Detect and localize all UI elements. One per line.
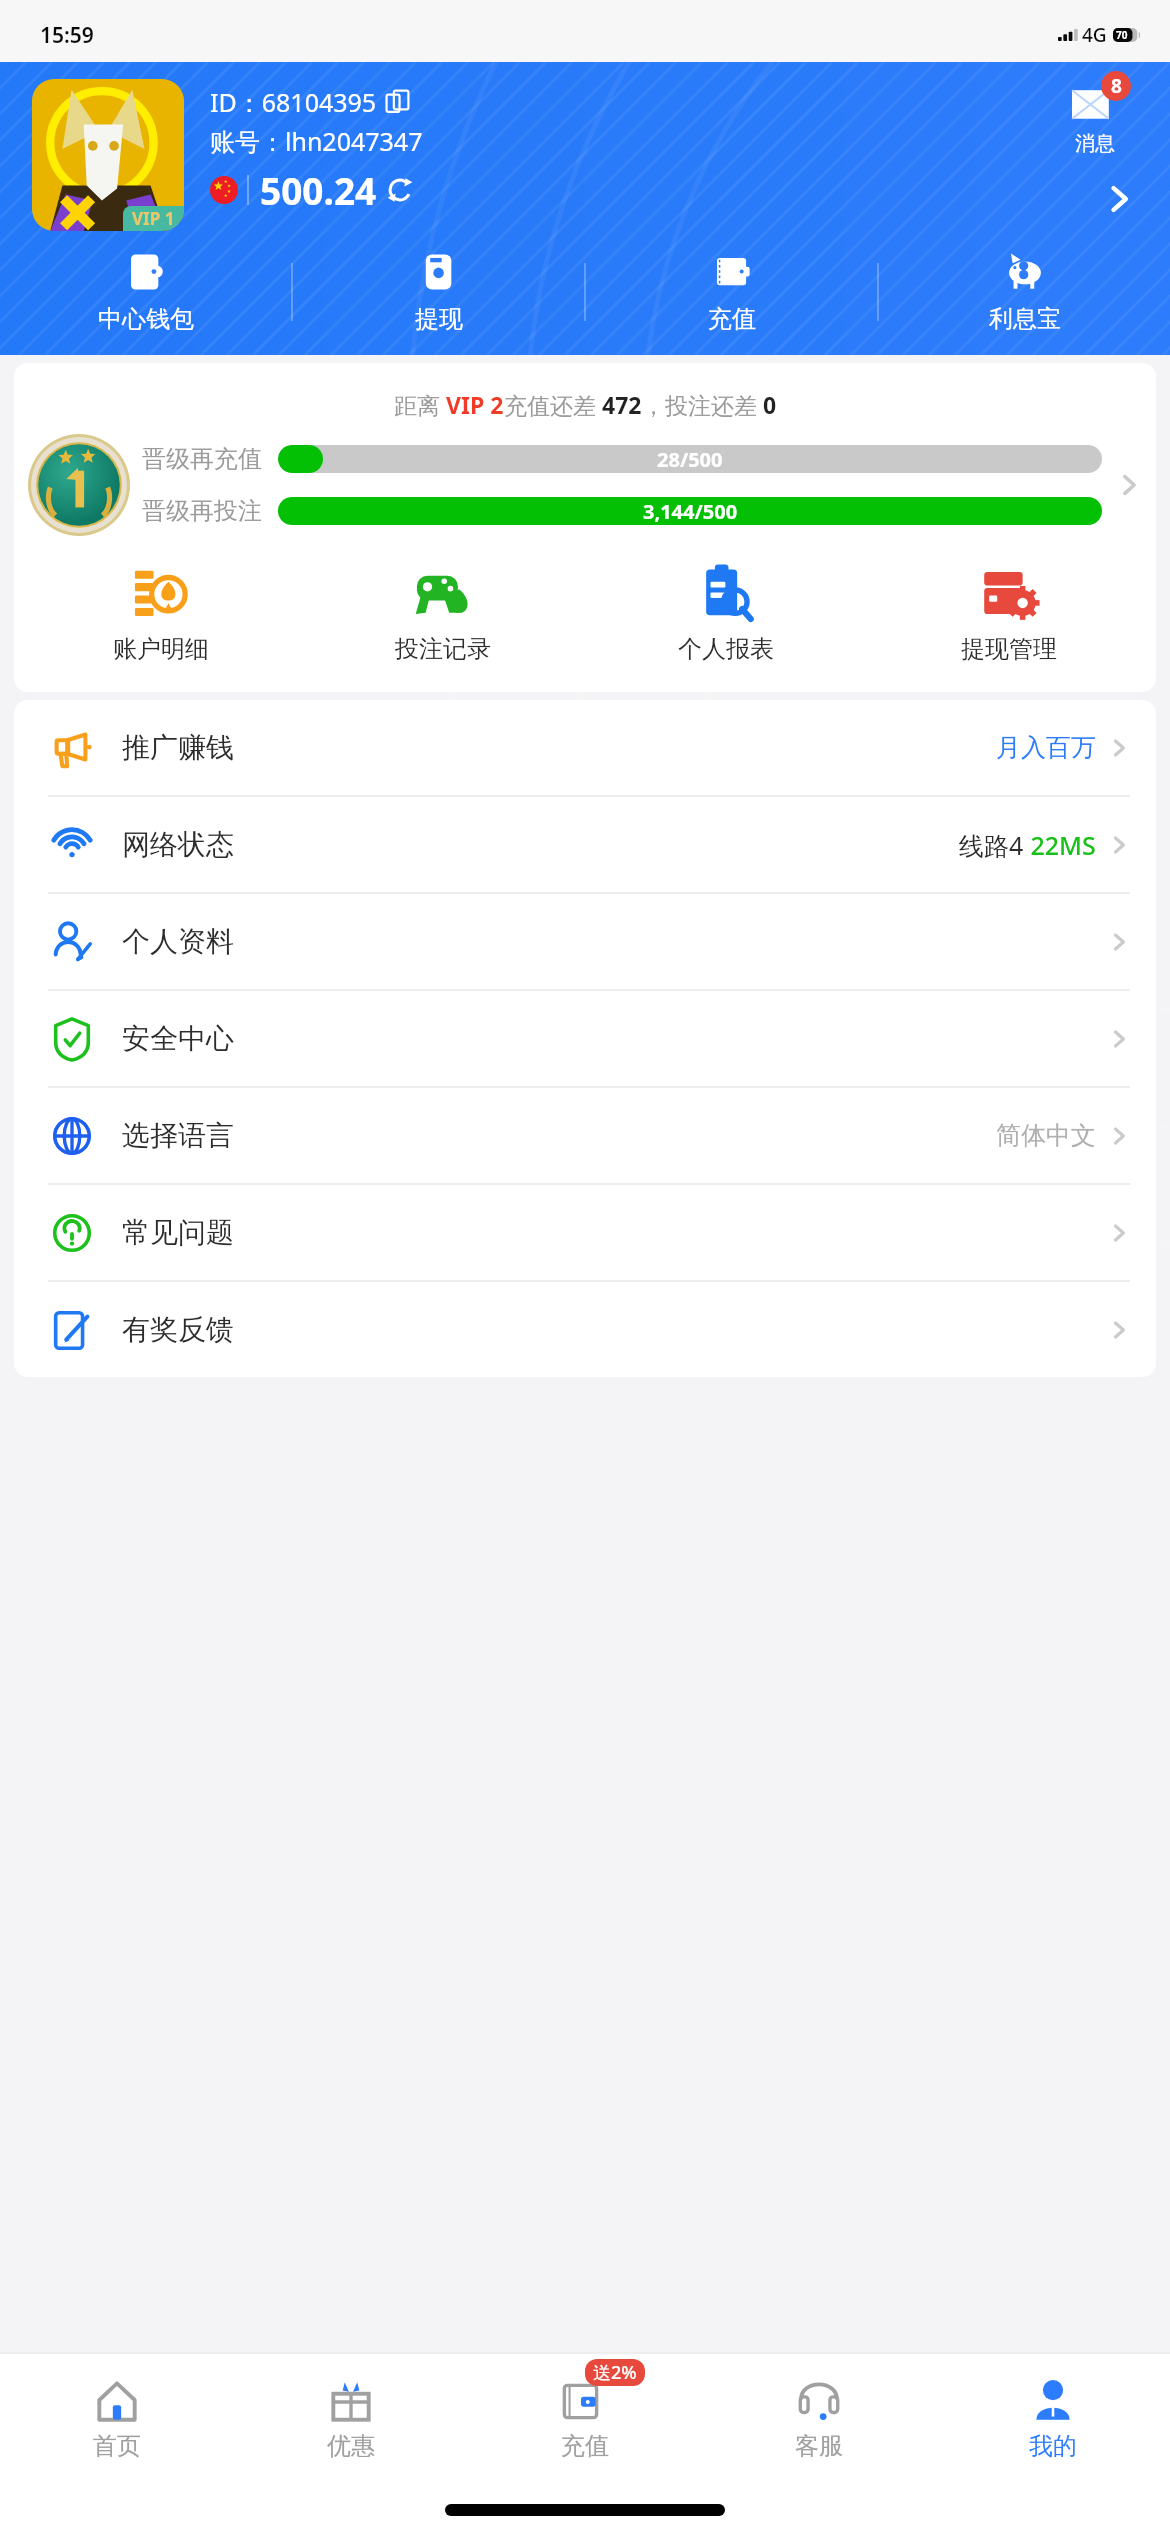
staticText: ，投注还差 bbox=[642, 389, 763, 420]
staticText: 账户明细 bbox=[113, 634, 209, 664]
staticText: 提现管理 bbox=[961, 634, 1057, 664]
staticText: 15:59 bbox=[40, 21, 94, 50]
staticText: 优惠 bbox=[327, 2431, 375, 2461]
button[interactable]: 个人报表 bbox=[584, 562, 867, 664]
staticText: 账号：lhn2047347 bbox=[210, 124, 423, 158]
staticText: 0 bbox=[763, 389, 777, 420]
staticText: 500.24 bbox=[260, 165, 377, 215]
staticText: 客服 bbox=[795, 2431, 843, 2461]
staticText: ID：68104395 bbox=[210, 85, 377, 119]
staticText: 消息 bbox=[1075, 131, 1115, 156]
button[interactable]: 网络状态 bbox=[14, 797, 1156, 892]
button[interactable]: 利息宝 bbox=[879, 229, 1170, 355]
staticText: 472 bbox=[602, 389, 642, 420]
button[interactable]: 送2% bbox=[468, 2352, 702, 2484]
button[interactable]: 提现管理 bbox=[867, 562, 1150, 664]
button[interactable]: 8 bbox=[1020, 81, 1170, 156]
staticText: VIP 2 bbox=[446, 389, 504, 420]
button[interactable]: 个人资料 bbox=[14, 894, 1156, 989]
staticText: 利息宝 bbox=[989, 304, 1061, 334]
button[interactable]: 首页 bbox=[0, 2352, 234, 2484]
staticText: 8 bbox=[1111, 73, 1122, 99]
button[interactable]: Copy ID bbox=[385, 89, 411, 115]
button[interactable]: 晋级再充值 bbox=[14, 434, 1156, 536]
button[interactable]: 提现 bbox=[293, 229, 584, 355]
staticText: 个人报表 bbox=[678, 634, 774, 664]
staticText: 晋级再投注 bbox=[142, 496, 262, 526]
button[interactable]: Account details bbox=[1102, 182, 1136, 216]
staticText: 充值 bbox=[708, 304, 756, 334]
staticText: 常见问题 bbox=[122, 1215, 234, 1250]
button[interactable]: 充值 bbox=[586, 229, 877, 355]
staticText: 28/500 bbox=[657, 446, 723, 473]
staticText: 个人资料 bbox=[122, 924, 234, 959]
staticText: 70 bbox=[1116, 28, 1128, 42]
staticText: 有奖反馈 bbox=[122, 1312, 234, 1347]
staticText: 网络状态 bbox=[122, 827, 234, 862]
button[interactable]: 账户明细 bbox=[20, 562, 302, 664]
button[interactable]: 我的 bbox=[936, 2352, 1170, 2484]
staticText: 选择语言 bbox=[122, 1118, 234, 1153]
staticText: 4G bbox=[1082, 22, 1107, 48]
staticText: 安全中心 bbox=[122, 1021, 234, 1056]
staticText: 简体中文 bbox=[996, 1120, 1096, 1151]
button[interactable]: Refresh balance bbox=[385, 175, 415, 205]
staticText: 推广赚钱 bbox=[122, 730, 234, 765]
button[interactable]: 投注记录 bbox=[302, 562, 584, 664]
staticText: VIP 1 bbox=[132, 207, 175, 230]
staticText: 距离 bbox=[394, 389, 446, 420]
button[interactable]: 推广赚钱 bbox=[14, 700, 1156, 795]
staticText: 3,144/500 bbox=[643, 498, 738, 525]
staticText: 送2% bbox=[593, 2360, 637, 2385]
button[interactable]: 中心钱包 bbox=[0, 229, 291, 355]
staticText: 首页 bbox=[93, 2431, 141, 2461]
button[interactable]: 客服 bbox=[702, 2352, 936, 2484]
staticText: 月入百万 bbox=[996, 732, 1096, 763]
button[interactable]: 优惠 bbox=[234, 2352, 468, 2484]
staticText: 投注记录 bbox=[395, 634, 491, 664]
staticText: 提现 bbox=[415, 304, 463, 334]
button[interactable]: Avatar bbox=[32, 79, 184, 231]
staticText: 充值 bbox=[561, 2431, 609, 2461]
button[interactable]: 选择语言 bbox=[14, 1088, 1156, 1183]
staticText: 中心钱包 bbox=[98, 304, 194, 334]
staticText: 线路4 bbox=[959, 828, 1024, 862]
staticText: 充值还差 bbox=[504, 389, 602, 420]
staticText: 晋级再充值 bbox=[142, 444, 262, 474]
staticText: 我的 bbox=[1029, 2431, 1077, 2461]
button[interactable]: 安全中心 bbox=[14, 991, 1156, 1086]
staticText: 22MS bbox=[1024, 828, 1096, 862]
button[interactable]: 有奖反馈 bbox=[14, 1282, 1156, 1377]
button[interactable]: 常见问题 bbox=[14, 1185, 1156, 1280]
